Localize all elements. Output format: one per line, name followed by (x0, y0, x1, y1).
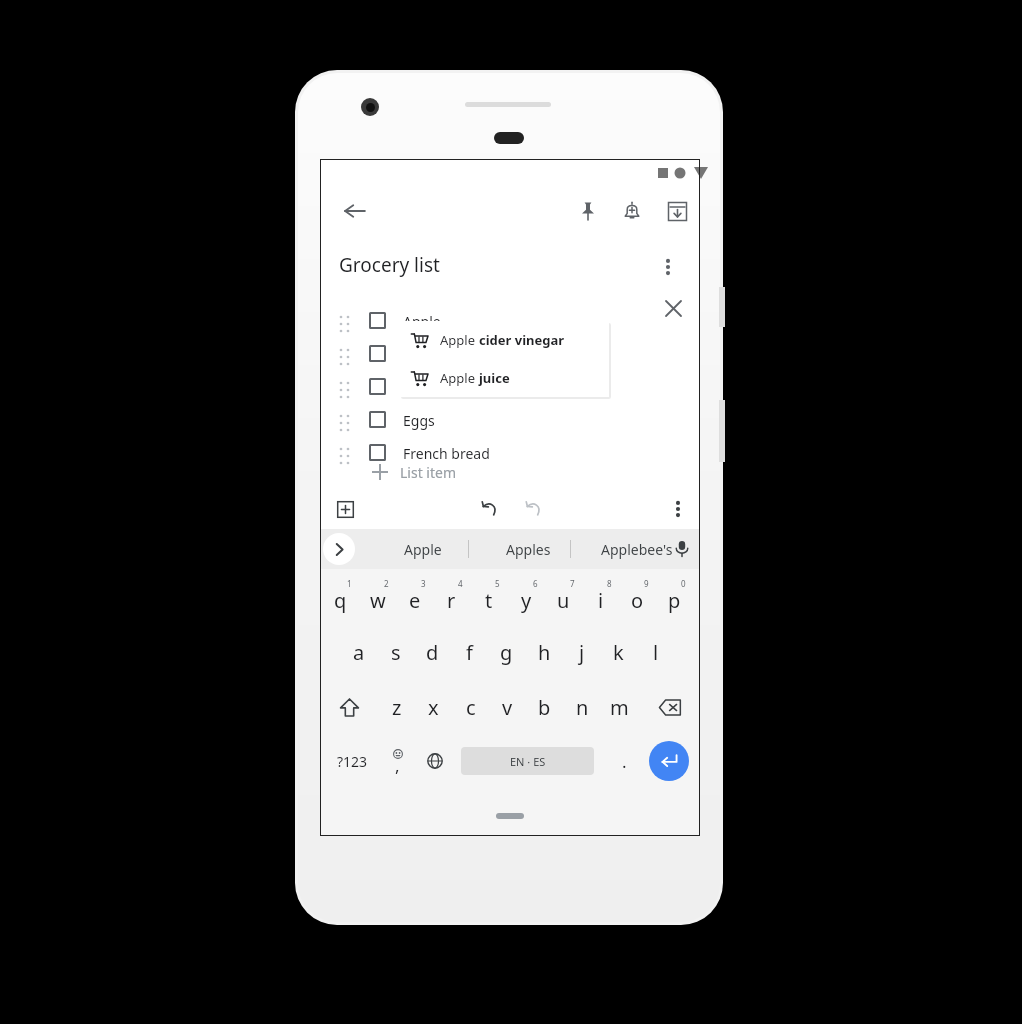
button[interactable]: Emoji and comma (378, 739, 416, 783)
staticText: Grocery list (339, 252, 440, 278)
button[interactable]: 2 (359, 575, 396, 619)
staticText: h (538, 639, 551, 666)
button[interactable]: Checkbox (369, 312, 386, 329)
button[interactable]: Checkbox (320, 304, 700, 337)
button[interactable]: 4 (433, 575, 470, 619)
button[interactable]: Checkbox (369, 444, 386, 461)
staticText: , (395, 754, 400, 777)
button[interactable]: z (378, 685, 415, 729)
button[interactable]: 8 (582, 575, 619, 619)
button[interactable]: Apples (483, 529, 573, 569)
staticText: 5 (495, 578, 500, 589)
staticText: Applebee's (601, 540, 673, 559)
button[interactable]: Backspace (646, 685, 694, 729)
button[interactable]: Checkbox (320, 370, 700, 403)
button[interactable]: b (526, 685, 563, 729)
button[interactable]: v (489, 685, 526, 729)
button[interactable]: Apple (399, 321, 609, 359)
staticText: 3 (421, 578, 426, 589)
button[interactable]: 3 (396, 575, 433, 619)
staticText: x (428, 694, 439, 721)
button[interactable]: 1 (322, 575, 359, 619)
staticText: 6 (533, 578, 538, 589)
button[interactable]: Add (325, 489, 365, 529)
button[interactable]: f (451, 630, 488, 674)
staticText: Apple (440, 331, 479, 349)
button[interactable]: EN · ES (461, 747, 594, 775)
button[interactable]: Applebee's (582, 529, 692, 569)
button[interactable]: Checkbox (320, 337, 700, 370)
button[interactable]: 0 (656, 575, 693, 619)
button[interactable]: 5 (470, 575, 507, 619)
button[interactable]: Remove item (654, 289, 692, 327)
staticText: f (466, 639, 473, 666)
button[interactable]: 9 (619, 575, 656, 619)
button[interactable]: ?123 (325, 739, 379, 783)
button[interactable]: c (452, 685, 489, 729)
staticText: o (631, 587, 644, 614)
staticText: u (557, 587, 570, 614)
button[interactable]: k (600, 630, 637, 674)
button[interactable]: 6 (508, 575, 545, 619)
button[interactable]: List item (372, 455, 572, 489)
staticText: List item (400, 463, 456, 482)
button[interactable]: s (377, 630, 414, 674)
button[interactable]: h (526, 630, 563, 674)
button[interactable]: Voice input (664, 529, 700, 569)
button[interactable]: More options (648, 247, 688, 287)
staticText: r (447, 587, 456, 614)
staticText: 2 (384, 578, 389, 589)
staticText: c (466, 694, 476, 721)
button[interactable]: More (658, 489, 698, 529)
staticText: Apple (404, 540, 442, 559)
button[interactable]: g (488, 630, 525, 674)
button[interactable]: Change language (415, 739, 455, 783)
staticText: m (610, 694, 629, 721)
staticText: i (598, 587, 604, 614)
button[interactable]: Archive (653, 187, 701, 235)
button[interactable]: d (414, 630, 451, 674)
button[interactable]: Pin (564, 187, 612, 235)
staticText: k (613, 639, 624, 666)
staticText: w (370, 587, 386, 614)
staticText: t (485, 587, 493, 614)
button[interactable]: m (601, 685, 638, 729)
staticText: 7 (570, 578, 575, 589)
button[interactable]: j (563, 630, 600, 674)
staticText: y (521, 587, 532, 614)
staticText: v (502, 694, 513, 721)
staticText: 8 (607, 578, 612, 589)
button[interactable]: 7 (545, 575, 582, 619)
button[interactable]: Checkbox (320, 436, 700, 469)
staticText: juice (479, 369, 510, 387)
staticText: Apples (506, 540, 551, 559)
staticText: q (334, 587, 347, 614)
staticText: j (579, 639, 585, 666)
button[interactable]: Checkbox (369, 411, 386, 428)
button[interactable]: a (340, 630, 377, 674)
staticText: 0 (681, 578, 686, 589)
staticText: b (538, 694, 551, 721)
button[interactable]: Redo (513, 489, 553, 529)
button[interactable]: Apple (378, 529, 468, 569)
button[interactable]: Back (331, 187, 379, 235)
staticText: n (576, 694, 589, 721)
button[interactable]: Shift (325, 685, 373, 729)
button[interactable]: n (564, 685, 601, 729)
button[interactable]: Undo (469, 489, 509, 529)
staticText: d (426, 639, 439, 666)
staticText: 1 (347, 578, 352, 589)
staticText: EN · ES (510, 754, 546, 769)
button[interactable]: Apple (399, 359, 609, 397)
button[interactable]: Reminder (608, 187, 656, 235)
button[interactable]: Checkbox (369, 345, 386, 362)
button[interactable]: Checkbox (369, 378, 386, 395)
staticText: 9 (644, 578, 649, 589)
button[interactable]: x (415, 685, 452, 729)
button[interactable]: . (605, 739, 643, 783)
button[interactable]: Checkbox (320, 403, 700, 436)
button[interactable]: Expand suggestions (323, 533, 355, 565)
button[interactable]: l (637, 630, 674, 674)
staticText: Apple (440, 369, 479, 387)
button[interactable]: Enter (649, 741, 689, 781)
